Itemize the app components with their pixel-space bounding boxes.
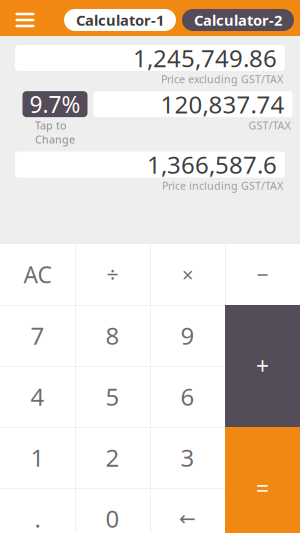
button[interactable]: Menu [6,5,44,35]
button[interactable]: Calculator-1 [64,9,176,31]
button[interactable]: × [150,244,225,305]
staticText: 4 [30,381,44,412]
staticText: . [34,503,40,533]
staticText: 1 [30,442,44,473]
staticText: 120,837.74 [160,88,284,120]
staticText: × [182,261,193,288]
button[interactable]: ← [150,488,225,533]
button[interactable]: 3 [150,427,225,488]
staticText: 0 [105,503,119,533]
staticText: 2 [105,442,119,473]
button[interactable]: − [225,244,300,305]
staticText: = [256,473,269,503]
button[interactable]: 1 [0,427,75,488]
staticText: Calculator-2 [194,10,282,30]
staticText: Tap to Change [35,118,75,146]
staticText: AC [23,259,51,289]
staticText: 7 [30,320,44,351]
staticText: 3 [180,442,194,473]
button[interactable]: + [225,305,300,427]
staticText: 6 [180,381,194,412]
staticText: Price excluding GST/TAX [161,72,283,86]
button[interactable]: 0 [75,488,150,533]
staticText: 9 [180,320,194,351]
button[interactable]: 9 [150,305,225,366]
button[interactable]: ÷ [75,244,150,305]
staticText: 1,245,749.86 [133,42,277,74]
button[interactable]: 7 [0,305,75,366]
button[interactable]: . [0,488,75,533]
staticText: + [256,351,269,381]
staticText: 5 [105,381,119,412]
button[interactable]: 9.7% [22,91,87,146]
staticText: 8 [105,320,119,351]
button[interactable]: 6 [150,366,225,427]
staticText: 9.7% [29,89,80,119]
staticText: Price including GST/TAX [162,178,283,193]
staticText: Calculator-1 [76,10,164,30]
staticText: ← [179,507,196,530]
staticText: 1,366,587.6 [147,149,277,180]
button[interactable]: AC [0,244,75,305]
button[interactable]: Calculator-2 [182,9,294,31]
staticText: ÷ [106,260,118,289]
staticText: GST/TAX [248,118,290,132]
button[interactable]: 8 [75,305,150,366]
button[interactable]: = [225,427,300,533]
button[interactable]: 4 [0,366,75,427]
staticText: − [256,260,268,289]
button[interactable]: 2 [75,427,150,488]
button[interactable]: 5 [75,366,150,427]
